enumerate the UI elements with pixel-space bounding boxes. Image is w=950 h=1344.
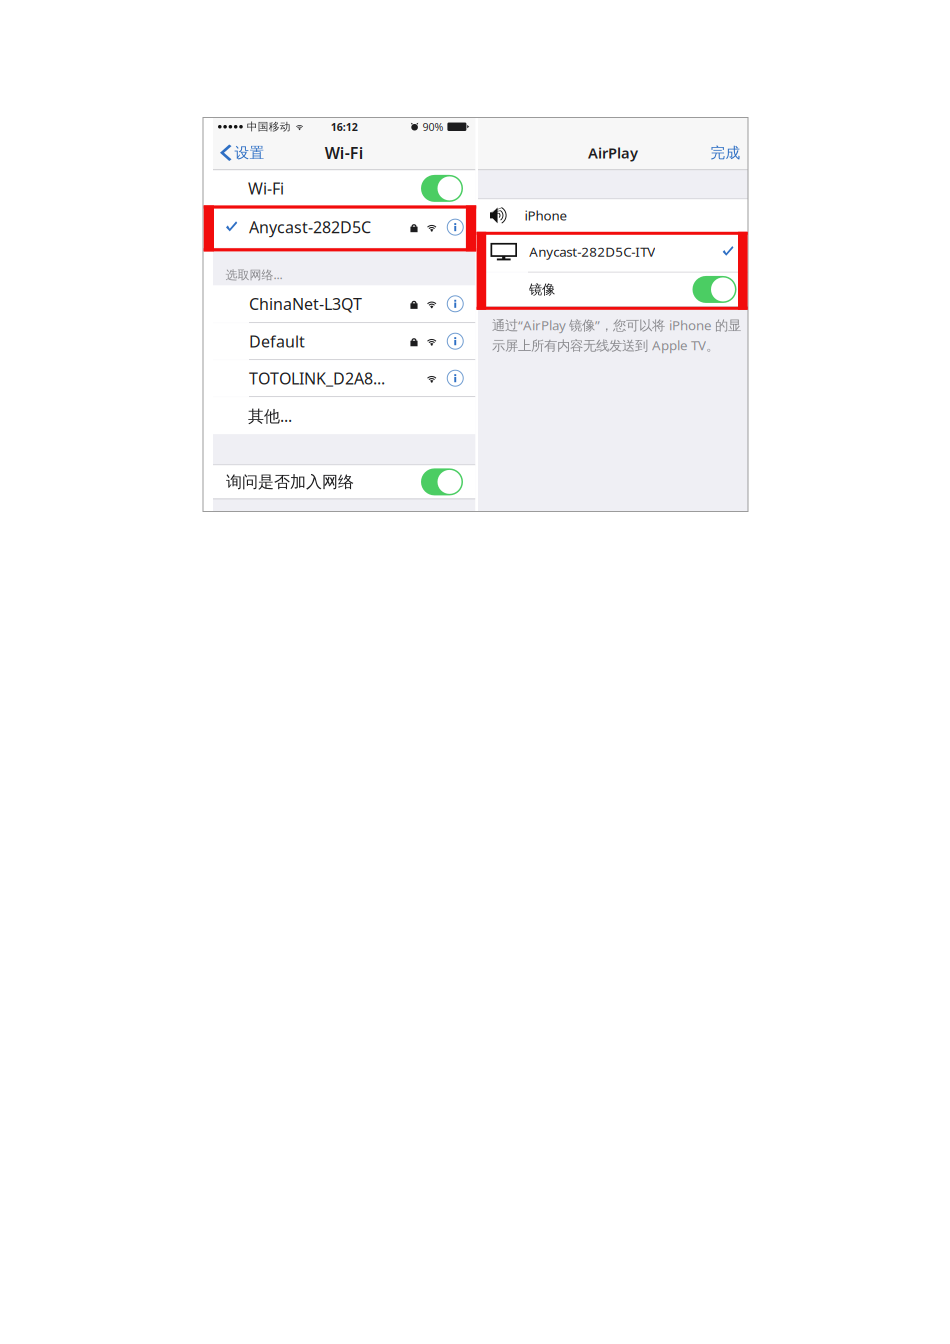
staticText: Wi-Fi: [325, 142, 364, 163]
staticText: 16:12: [331, 120, 358, 134]
staticText: ChinaNet-L3QT: [249, 293, 362, 314]
staticText: 通过“AirPlay 镜像”，您可以将 iPhone 的显: [492, 316, 741, 334]
button[interactable]: ChinaNet-L3QT: [213, 285, 475, 322]
staticText: 中国移动: [247, 120, 291, 133]
staticText: 其他...: [248, 405, 292, 426]
staticText: Anycast-282D5C-ITV: [529, 243, 655, 260]
staticText: 完成: [710, 144, 740, 162]
staticText: Wi-Fi: [248, 178, 284, 199]
button[interactable]: Anycast-282D5C-ITV: [478, 231, 748, 272]
staticText: 镜像: [529, 281, 555, 298]
staticText: 示屏上所有内容无线发送到 Apple TV。: [492, 336, 719, 354]
staticText: 询问是否加入网络: [226, 472, 354, 492]
staticText: iPhone: [525, 206, 568, 224]
staticText: 设置: [234, 144, 264, 162]
staticText: TOTOLINK_D2A8...: [249, 368, 385, 389]
staticText: Default: [249, 331, 305, 352]
staticText: 选取网络...: [225, 267, 282, 282]
staticText: 90%: [422, 120, 443, 134]
button[interactable]: Default: [213, 323, 475, 359]
button[interactable]: TOTOLINK_D2A8...: [213, 360, 475, 396]
button[interactable]: 设置: [213, 136, 264, 169]
button[interactable]: iPhone: [478, 199, 748, 231]
button[interactable]: Anycast-282D5C: [213, 206, 475, 248]
button[interactable]: 完成: [710, 136, 748, 169]
button[interactable]: 其他...: [213, 397, 475, 434]
staticText: AirPlay: [588, 143, 638, 162]
staticText: Anycast-282D5C: [249, 216, 371, 238]
